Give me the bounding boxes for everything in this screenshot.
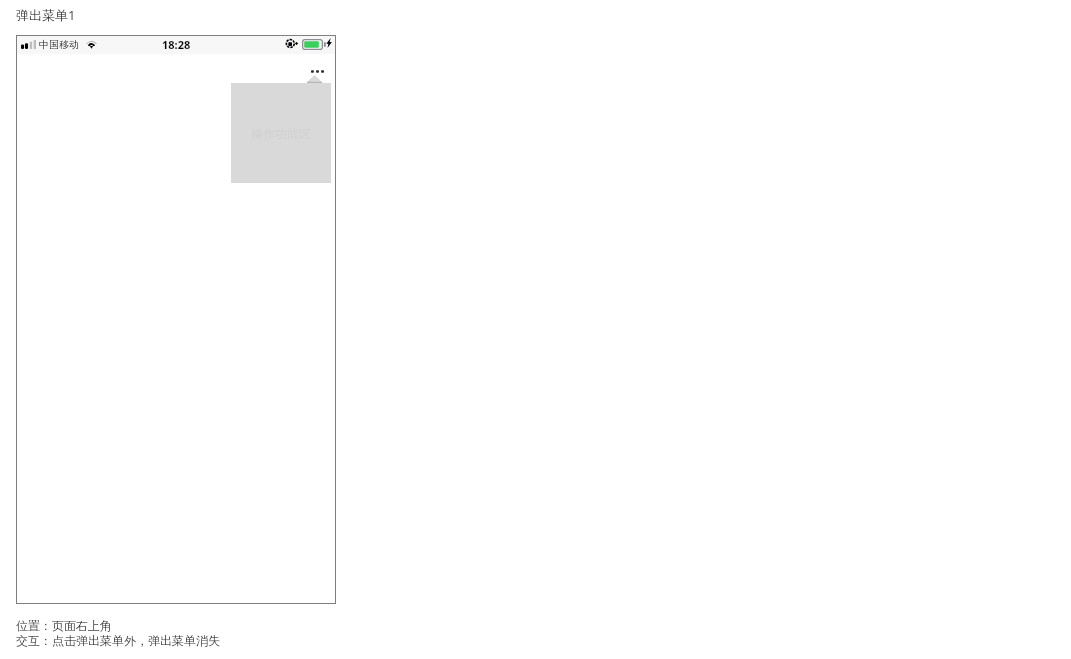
staticText: 中国移动: [39, 38, 79, 51]
staticText: 18:28: [162, 37, 191, 52]
staticText: 弹出菜单1: [16, 6, 76, 24]
staticText: 位置：页面右上角: [16, 618, 112, 633]
button[interactable]: More options: [305, 62, 329, 80]
staticText: 交互：点击弹出菜单外，弹出菜单消失: [16, 633, 220, 648]
button[interactable]: Dismiss popup menu: [16, 54, 336, 604]
